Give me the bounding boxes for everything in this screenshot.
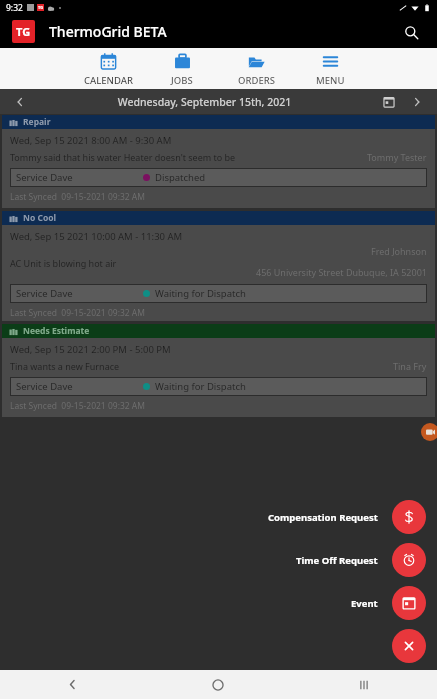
- staticText: Tommy said that his water Heater doesn't…: [10, 151, 236, 163]
- staticText: Tina Fry: [393, 360, 427, 372]
- staticText: CALENDAR: [84, 74, 133, 87]
- staticText: Service Dave: [16, 287, 73, 300]
- staticText: Dispatched: [155, 171, 206, 184]
- button[interactable]: Recent apps: [291, 670, 437, 699]
- staticText: Waiting for Dispatch: [155, 380, 246, 393]
- button[interactable]: Service Dave: [10, 284, 427, 303]
- button[interactable]: Service Dave: [10, 168, 427, 187]
- staticText: 456 University Street Dubuque, IA 52001: [256, 266, 427, 278]
- button[interactable]: Search: [397, 18, 425, 46]
- staticText: Service Dave: [16, 171, 73, 184]
- staticText: Fred Johnson: [371, 245, 427, 257]
- staticText: MENU: [316, 74, 345, 87]
- staticText: Wednesday, September 15th, 2021: [30, 95, 379, 109]
- staticText: JOBS: [171, 74, 193, 87]
- staticText: No Cool: [23, 212, 57, 224]
- staticText: Time Off Request: [296, 554, 378, 567]
- button[interactable]: Repair: [2, 115, 435, 208]
- button[interactable]: CALENDAR: [71, 48, 145, 89]
- button[interactable]: Time Off Request: [296, 543, 426, 577]
- button[interactable]: No Cool: [2, 211, 435, 321]
- button[interactable]: ThermoGrid logo: [12, 20, 35, 43]
- staticText: Last Synced 09-15-2021 09:32 AM: [10, 307, 146, 319]
- staticText: ThermoGrid BETA: [49, 22, 167, 41]
- staticText: Repair: [23, 116, 51, 128]
- button[interactable]: Compensation Request: [268, 500, 426, 534]
- staticText: Wed, Sep 15 2021 2:00 PM - 5:00 PM: [10, 343, 171, 356]
- button[interactable]: Needs Estimate: [2, 324, 435, 417]
- staticText: TG: [38, 5, 44, 10]
- staticText: Wed, Sep 15 2021 8:00 AM - 9:30 AM: [10, 134, 172, 147]
- staticText: AC Unit is blowing hot air: [10, 257, 117, 269]
- button[interactable]: Event: [351, 586, 426, 620]
- button[interactable]: Service Dave: [10, 377, 427, 396]
- staticText: Service Dave: [16, 380, 73, 393]
- staticText: ORDERS: [238, 74, 275, 87]
- button[interactable]: Next day: [407, 92, 427, 112]
- staticText: Last Synced 09-15-2021 09:32 AM: [10, 400, 146, 412]
- staticText: Tommy Tester: [367, 151, 427, 163]
- button[interactable]: Previous day: [10, 92, 30, 112]
- button[interactable]: JOBS: [145, 48, 219, 89]
- staticText: Event: [351, 597, 378, 610]
- staticText: Wed, Sep 15 2021 10:00 AM - 11:30 AM: [10, 230, 183, 243]
- staticText: TG: [16, 24, 31, 39]
- button[interactable]: Home: [145, 670, 291, 699]
- staticText: Compensation Request: [268, 511, 378, 524]
- staticText: Needs Estimate: [23, 325, 90, 337]
- staticText: Waiting for Dispatch: [155, 287, 246, 300]
- button[interactable]: ORDERS: [219, 48, 293, 89]
- staticText: 9:32: [6, 2, 23, 14]
- button[interactable]: Camera badge: [421, 423, 437, 441]
- button[interactable]: MENU: [293, 48, 367, 89]
- button[interactable]: Back: [0, 670, 145, 699]
- button[interactable]: Close menu: [392, 629, 426, 663]
- button[interactable]: Pick date: [379, 92, 399, 112]
- staticText: Tina wants a new Furnace: [10, 360, 120, 372]
- staticText: Last Synced 09-15-2021 09:32 AM: [10, 191, 146, 203]
